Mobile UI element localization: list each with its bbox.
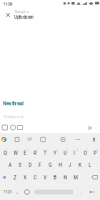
button[interactable]: Keyboard tool: [58, 135, 67, 144]
staticText: C: [33, 175, 36, 180]
staticText: D: [28, 162, 31, 168]
staticText: B: [53, 175, 56, 180]
button[interactable]: T: [40, 147, 50, 159]
button[interactable]: P: [90, 147, 100, 159]
staticText: Thread in: [14, 10, 29, 14]
staticText: S: [18, 162, 21, 168]
button[interactable]: G: [45, 159, 55, 171]
staticText: W: [13, 150, 17, 156]
button[interactable]: Keyboard tool: [0, 135, 8, 144]
button[interactable]: .: [77, 187, 84, 196]
staticText: T: [43, 150, 46, 156]
button[interactable]: W: [10, 147, 20, 159]
staticText: 1: [7, 149, 8, 152]
staticText: H: [58, 162, 61, 168]
staticText: 7: [67, 149, 68, 152]
button[interactable]: Keyboard tool: [25, 135, 34, 144]
button[interactable]: B: [50, 171, 60, 183]
button[interactable]: ,: [13, 187, 20, 196]
staticText: History is on: [3, 114, 24, 119]
button[interactable]: Gallery: [0, 123, 9, 132]
staticText: 9: [87, 149, 88, 152]
button[interactable]: Emoji: [22, 187, 31, 196]
staticText: L: [88, 162, 91, 168]
button[interactable]: R: [30, 147, 40, 159]
button[interactable]: Send: [85, 123, 94, 132]
staticText: F: [38, 162, 41, 168]
staticText: Y: [53, 150, 56, 156]
button[interactable]: Camera: [16, 123, 25, 132]
staticText: E: [23, 150, 26, 156]
staticText: ?123: [3, 190, 11, 194]
staticText: X: [23, 175, 26, 180]
staticText: N: [63, 175, 66, 180]
staticText: 6: [57, 149, 58, 152]
button[interactable]: Backspace: [90, 173, 99, 182]
button[interactable]: Stickers: [8, 123, 17, 132]
button[interactable]: Keyboard tool: [73, 135, 82, 144]
button[interactable]: Keyboard tool: [38, 135, 47, 144]
staticText: V: [43, 175, 46, 180]
staticText: Q: [3, 150, 6, 156]
button[interactable]: K: [75, 159, 85, 171]
staticText: M: [73, 175, 77, 180]
button[interactable]: V: [40, 171, 50, 183]
button[interactable]: L: [85, 159, 95, 171]
button[interactable]: Keyboard tool: [12, 135, 21, 144]
button[interactable]: Keyboard tool: [89, 135, 98, 144]
button[interactable]: N: [60, 171, 70, 183]
button[interactable]: I: [70, 147, 80, 159]
staticText: 5: [47, 149, 48, 152]
button[interactable]: Space: [34, 187, 73, 196]
button[interactable]: C: [30, 171, 40, 183]
button[interactable]: Y: [50, 147, 60, 159]
staticText: G: [48, 162, 51, 168]
button[interactable]: O: [80, 147, 90, 159]
button[interactable]: Z: [10, 171, 20, 183]
button[interactable]: U: [60, 147, 70, 159]
staticText: U: [63, 150, 66, 156]
staticText: A: [8, 162, 11, 168]
staticText: Z: [13, 175, 16, 180]
staticText: K: [78, 162, 81, 168]
button[interactable]: F: [35, 159, 45, 171]
staticText: New thread: [3, 101, 23, 106]
staticText: 11:58: [3, 1, 12, 6]
staticText: 8: [77, 149, 78, 152]
button[interactable]: X: [20, 171, 30, 183]
staticText: J: [68, 162, 71, 168]
button[interactable]: S: [15, 159, 25, 171]
button[interactable]: D: [25, 159, 35, 171]
button[interactable]: ?123: [1, 187, 13, 196]
button[interactable]: Shift: [0, 173, 9, 182]
button[interactable]: Enter: [87, 187, 96, 196]
button[interactable]: A: [5, 159, 15, 171]
button[interactable]: H: [55, 159, 65, 171]
button[interactable]: E: [20, 147, 30, 159]
staticText: P: [93, 150, 96, 156]
staticText: ,: [16, 189, 17, 195]
button[interactable]: M: [70, 171, 80, 183]
staticText: Uptodown: [14, 15, 33, 20]
staticText: O: [83, 150, 86, 156]
staticText: GIF: [27, 138, 32, 141]
button[interactable]: Close: [2, 9, 14, 21]
staticText: 2: [17, 149, 18, 152]
staticText: R: [33, 150, 36, 156]
staticText: I: [73, 150, 74, 156]
button[interactable]: Q: [0, 147, 10, 159]
staticText: .: [80, 189, 81, 195]
button[interactable]: J: [65, 159, 75, 171]
